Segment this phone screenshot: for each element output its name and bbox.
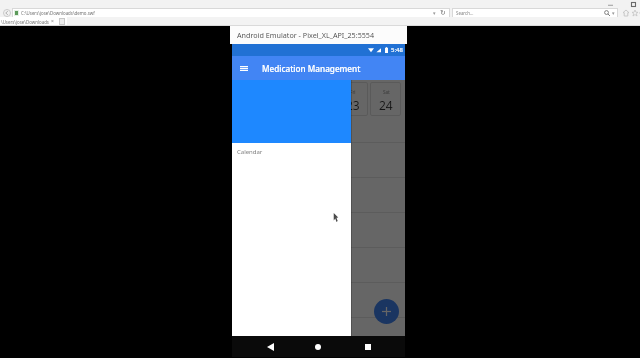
staticText: ▾ <box>612 10 615 16</box>
staticText: ▾ <box>433 10 436 16</box>
button[interactable]: Favorites <box>630 8 639 17</box>
button[interactable] <box>232 177 405 212</box>
staticText: \Users\jose\Downloads\... <box>1 19 49 25</box>
button[interactable]: Add medication <box>374 299 399 324</box>
button[interactable] <box>232 317 405 336</box>
button[interactable]: Back <box>2 8 11 17</box>
staticText: ↻ <box>440 9 446 17</box>
staticText: Fri <box>350 89 356 95</box>
button[interactable]: Restore <box>627 1 639 7</box>
button[interactable]: Home <box>298 336 338 357</box>
staticText: C:\Users\jose\Downloads\demo.swf <box>21 10 95 16</box>
button[interactable]: Minimise <box>603 1 617 7</box>
button[interactable]: Open navigation drawer <box>232 56 255 80</box>
staticText: 5:48 <box>391 46 403 54</box>
staticText: Android Emulator - Pixel_XL_API_25:5554 <box>237 30 375 40</box>
staticText: × <box>51 18 54 25</box>
button[interactable]: Back <box>250 336 290 357</box>
button[interactable]: New tab <box>56 17 67 26</box>
button[interactable] <box>232 282 405 317</box>
staticText: 24 <box>379 97 393 113</box>
staticText: Sat <box>383 89 390 95</box>
button[interactable]: Home <box>621 8 630 17</box>
button[interactable]: Close tab <box>49 17 56 26</box>
button[interactable]: Sat <box>370 82 401 116</box>
button[interactable]: \Users\jose\Downloads\... <box>0 17 49 26</box>
staticText: Medication Management <box>262 63 361 74</box>
staticText: Calendar <box>237 148 263 156</box>
button[interactable]: Search... <box>452 8 618 18</box>
staticText: 23 <box>346 97 360 113</box>
button[interactable] <box>232 247 405 282</box>
button[interactable] <box>232 142 405 177</box>
button[interactable] <box>232 212 405 247</box>
staticText: Search... <box>456 10 474 16</box>
button[interactable]: Calendar <box>232 143 351 161</box>
button[interactable]: Recent apps <box>348 336 388 357</box>
button[interactable]: C:\Users\jose\Downloads\demo.swf <box>12 8 450 18</box>
button[interactable]: Tools <box>639 8 640 17</box>
button[interactable]: Fri <box>337 82 368 116</box>
